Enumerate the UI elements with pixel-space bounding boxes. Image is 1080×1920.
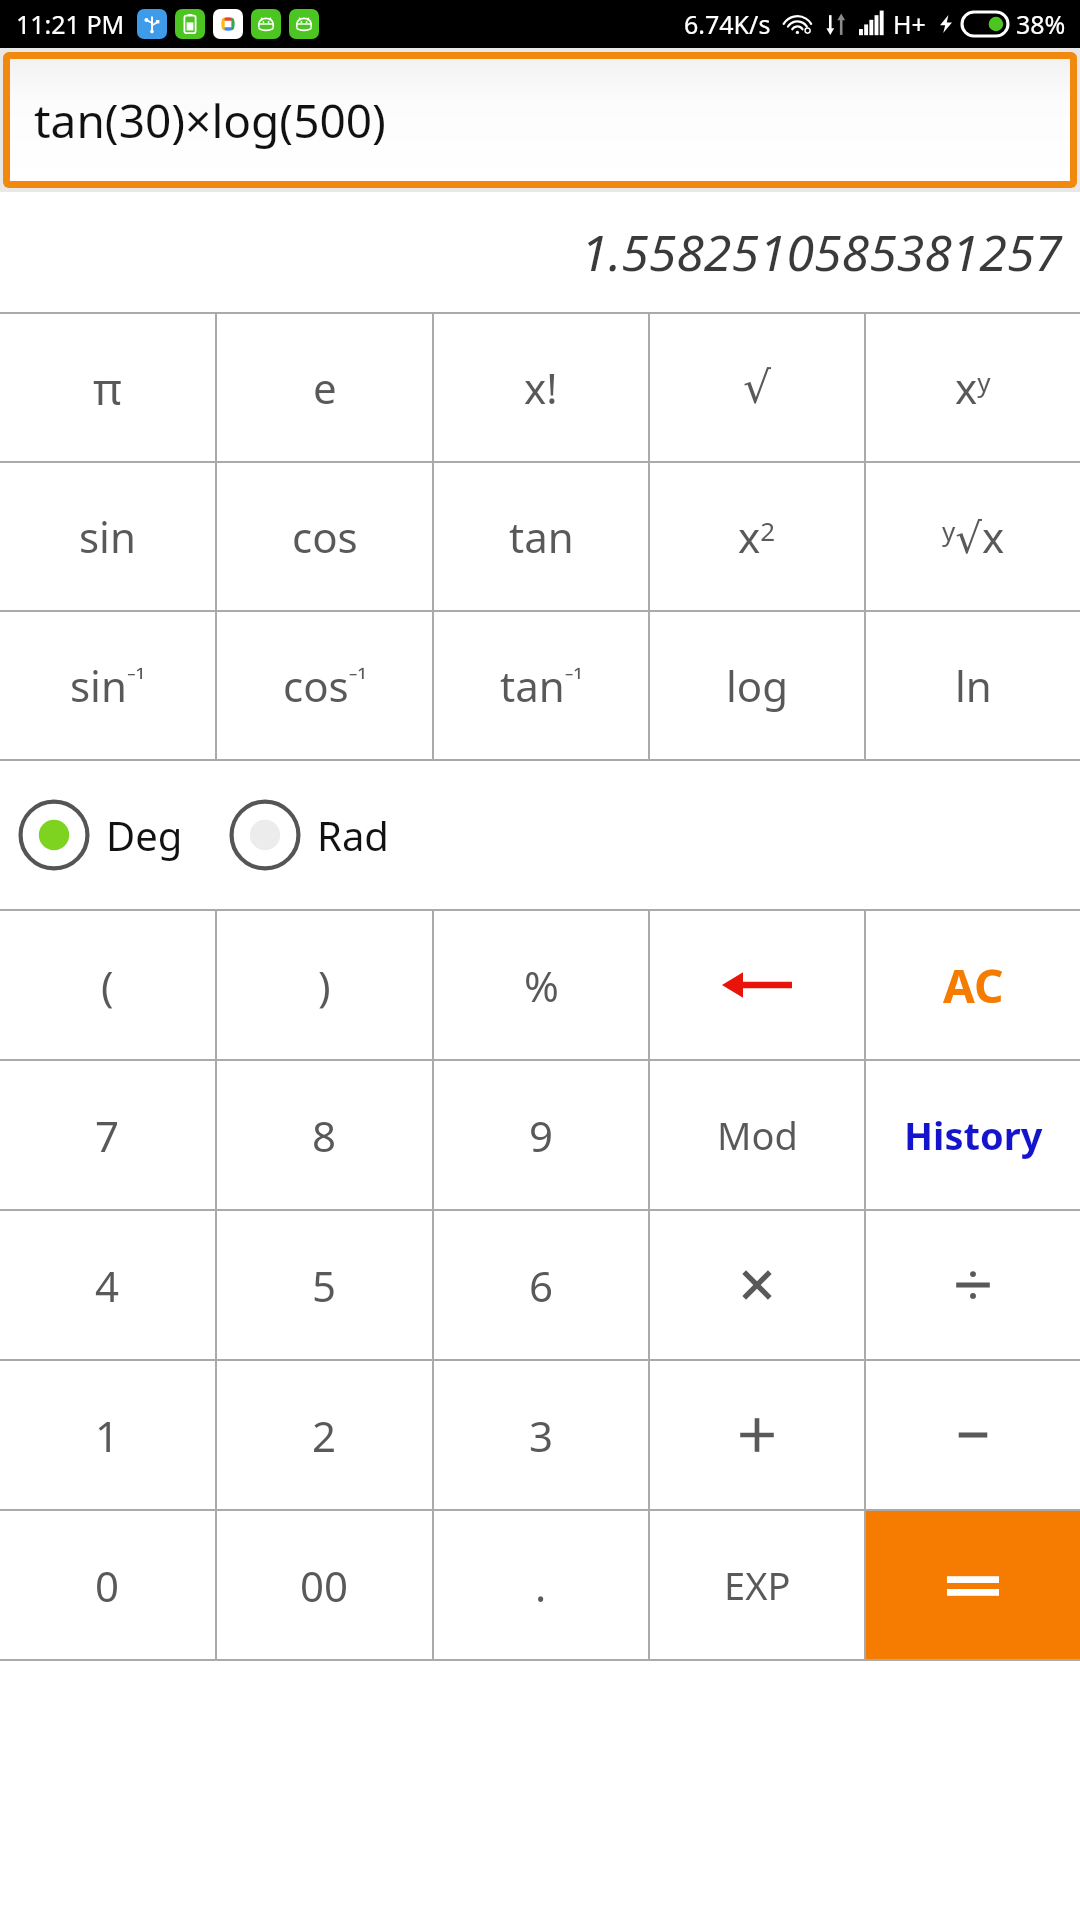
staticText: Deg bbox=[106, 808, 183, 862]
staticText: ) bbox=[318, 957, 331, 1014]
button[interactable]: 6 bbox=[434, 1211, 648, 1359]
button[interactable]: tan(30)×log(500) bbox=[10, 59, 1070, 181]
button[interactable]: π bbox=[0, 314, 215, 461]
button[interactable]: . bbox=[434, 1511, 648, 1659]
button[interactable]: tan bbox=[434, 463, 648, 610]
button[interactable]: ln bbox=[866, 612, 1080, 759]
staticText: e bbox=[313, 359, 337, 416]
staticText: 2 bbox=[312, 1407, 337, 1464]
button[interactable]: cos⁻¹ bbox=[217, 612, 432, 759]
button[interactable]: sin⁻¹ bbox=[0, 612, 215, 759]
staticText: ( bbox=[101, 957, 114, 1014]
button[interactable]: x! bbox=[434, 314, 648, 461]
button[interactable]: Equals bbox=[866, 1511, 1080, 1659]
staticText: 7 bbox=[95, 1107, 120, 1164]
staticText: History bbox=[904, 1109, 1043, 1161]
button[interactable]: AC bbox=[866, 911, 1080, 1059]
staticText: 5 bbox=[312, 1257, 337, 1314]
button[interactable]: Backspace bbox=[650, 911, 864, 1059]
staticText: 1 bbox=[95, 1407, 120, 1464]
staticText: 3 bbox=[529, 1407, 554, 1464]
staticText: x! bbox=[524, 359, 558, 416]
staticText: 6.74K/s bbox=[684, 7, 771, 41]
button[interactable]: Plus bbox=[650, 1361, 864, 1509]
button[interactable]: x2 bbox=[650, 463, 864, 610]
staticText: 1.5582510585381257 bbox=[580, 218, 1062, 286]
button[interactable]: 8 bbox=[217, 1061, 432, 1209]
staticText: 8 bbox=[312, 1107, 337, 1164]
button[interactable]: Multiply bbox=[650, 1211, 864, 1359]
button[interactable]: Deg bbox=[16, 797, 183, 873]
staticText: 9 bbox=[529, 1107, 554, 1164]
staticText: y√x bbox=[942, 508, 1005, 565]
button[interactable]: √ bbox=[650, 314, 864, 461]
button[interactable]: e bbox=[217, 314, 432, 461]
staticText: tan bbox=[509, 508, 574, 565]
staticText: sin⁻¹ bbox=[70, 657, 145, 714]
staticText: 38% bbox=[1016, 7, 1066, 41]
button[interactable]: ( bbox=[0, 911, 215, 1059]
staticText: H+ bbox=[893, 7, 926, 41]
staticText: x2 bbox=[738, 508, 776, 565]
staticText: sin bbox=[79, 508, 136, 565]
button[interactable]: Mod bbox=[650, 1061, 864, 1209]
staticText: Rad bbox=[317, 808, 389, 862]
button[interactable]: EXP bbox=[650, 1511, 864, 1659]
button[interactable]: History bbox=[866, 1061, 1080, 1209]
button[interactable]: 00 bbox=[217, 1511, 432, 1659]
button[interactable]: 4 bbox=[0, 1211, 215, 1359]
button[interactable]: Divide bbox=[866, 1211, 1080, 1359]
button[interactable]: 1 bbox=[0, 1361, 215, 1509]
button[interactable]: 5 bbox=[217, 1211, 432, 1359]
staticText: √ bbox=[743, 362, 772, 413]
button[interactable]: 7 bbox=[0, 1061, 215, 1209]
button[interactable]: Minus bbox=[866, 1361, 1080, 1509]
button[interactable]: 3 bbox=[434, 1361, 648, 1509]
staticText: cos bbox=[292, 508, 358, 565]
button[interactable]: log bbox=[650, 612, 864, 759]
button[interactable]: y√x bbox=[866, 463, 1080, 610]
staticText: log bbox=[726, 657, 789, 714]
staticText: AC bbox=[943, 954, 1004, 1017]
button[interactable]: sin bbox=[0, 463, 215, 610]
button[interactable]: cos bbox=[217, 463, 432, 610]
button[interactable]: ) bbox=[217, 911, 432, 1059]
staticText: ln bbox=[955, 657, 992, 714]
button[interactable]: 2 bbox=[217, 1361, 432, 1509]
staticText: 11:21 PM bbox=[16, 7, 125, 41]
staticText: % bbox=[524, 957, 559, 1014]
button[interactable]: 0 bbox=[0, 1511, 215, 1659]
button[interactable]: 9 bbox=[434, 1061, 648, 1209]
staticText: 4 bbox=[95, 1257, 120, 1314]
staticText: 00 bbox=[300, 1557, 349, 1614]
staticText: 6 bbox=[529, 1257, 554, 1314]
button[interactable]: tan⁻¹ bbox=[434, 612, 648, 759]
staticText: cos⁻¹ bbox=[283, 657, 367, 714]
staticText: 0 bbox=[95, 1557, 120, 1614]
button[interactable]: xy bbox=[866, 314, 1080, 461]
staticText: tan(30)×log(500) bbox=[34, 89, 386, 152]
staticText: Mod bbox=[717, 1109, 798, 1161]
staticText: xy bbox=[955, 359, 991, 416]
staticText: EXP bbox=[724, 1559, 791, 1611]
staticText: π bbox=[93, 358, 122, 418]
staticText: tan⁻¹ bbox=[500, 657, 583, 714]
button[interactable]: % bbox=[434, 911, 648, 1059]
button[interactable]: Rad bbox=[227, 797, 389, 873]
staticText: . bbox=[535, 1557, 547, 1614]
